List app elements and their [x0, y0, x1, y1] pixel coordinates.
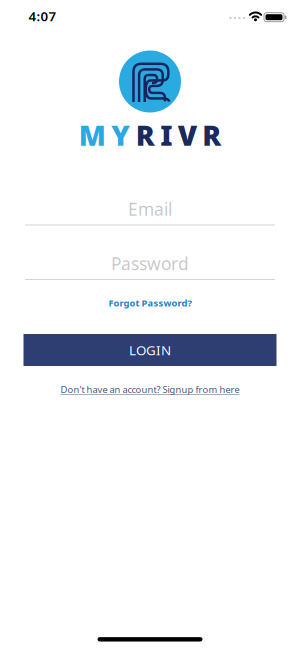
button[interactable]: Forgot Password?: [108, 297, 191, 309]
staticText: LOGIN: [129, 341, 171, 359]
staticText: Forgot Password?: [108, 297, 191, 309]
staticText: M: [79, 116, 106, 154]
staticText: I: [160, 116, 172, 154]
staticText: 4:07: [28, 7, 56, 25]
staticText: R: [202, 116, 221, 154]
button[interactable]: LOGIN: [23, 334, 276, 366]
staticText: Email: [128, 197, 172, 220]
button[interactable]: Don't have an account? Signup from here: [60, 383, 239, 396]
staticText: Don't have an account? Signup from here: [60, 383, 239, 396]
staticText: V: [178, 116, 197, 154]
staticText: R: [136, 116, 155, 154]
button[interactable]: Password: [25, 252, 275, 280]
staticText: Password: [111, 252, 189, 275]
button[interactable]: Email: [25, 197, 275, 225]
staticText: Y: [111, 116, 130, 154]
